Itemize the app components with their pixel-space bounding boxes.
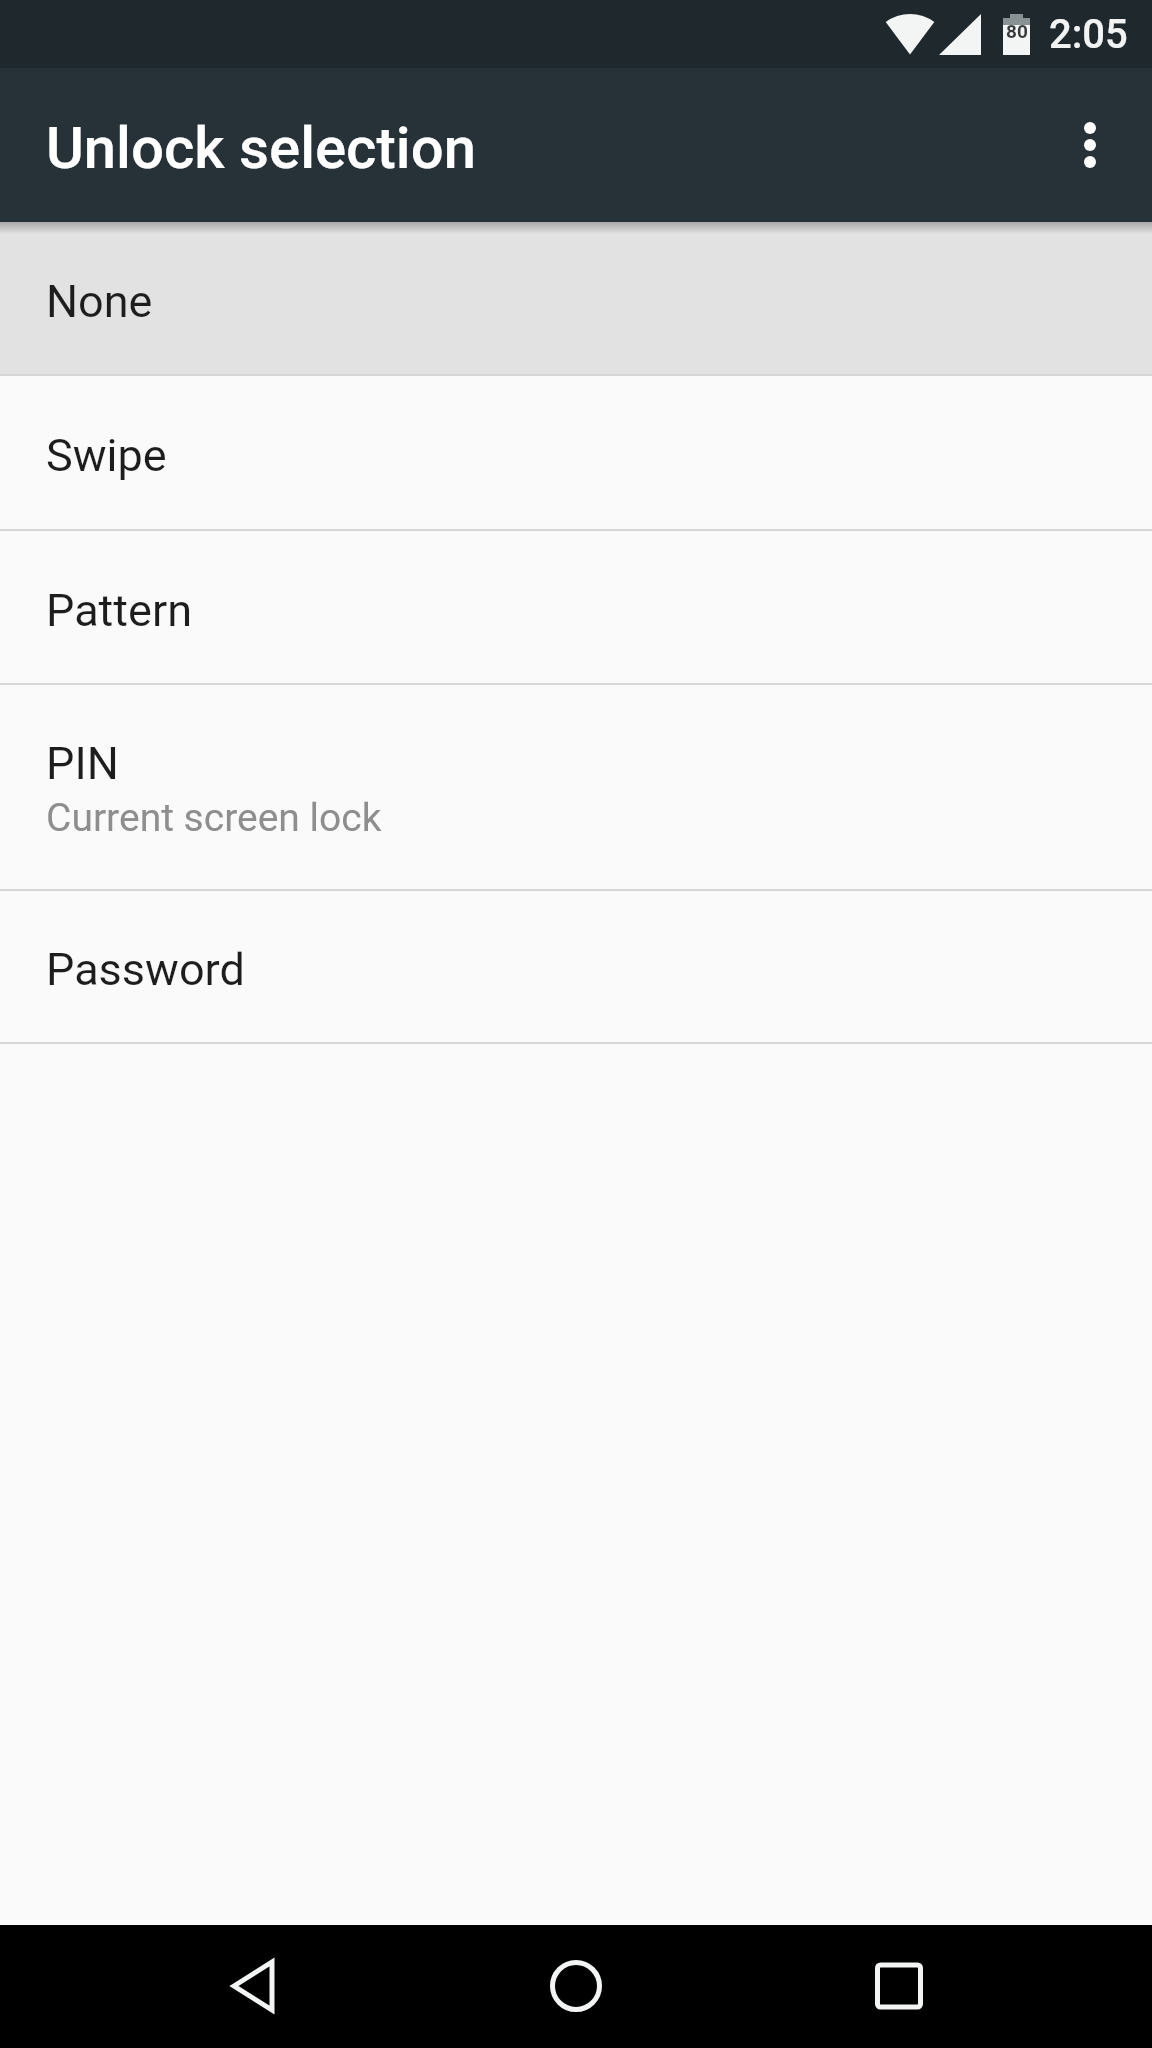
- staticText: None: [46, 275, 153, 328]
- button[interactable]: [195, 1950, 311, 2022]
- button[interactable]: Pattern: [0, 531, 1152, 683]
- button[interactable]: Password: [0, 891, 1152, 1042]
- staticText: Pattern: [46, 584, 193, 637]
- staticText: 2:05: [1049, 11, 1128, 58]
- staticText: Swipe: [46, 429, 167, 482]
- button[interactable]: [841, 1950, 957, 2022]
- staticText: Password: [46, 943, 245, 996]
- staticText: PIN: [46, 737, 119, 790]
- button[interactable]: [518, 1950, 634, 2022]
- button[interactable]: PIN: [0, 685, 1152, 889]
- button[interactable]: Swipe: [0, 376, 1152, 529]
- button[interactable]: None: [0, 222, 1152, 374]
- staticText: Unlock selection: [46, 114, 476, 182]
- staticText: 80: [1006, 20, 1028, 42]
- staticText: Current screen lock: [46, 795, 382, 841]
- button[interactable]: [1028, 68, 1152, 222]
